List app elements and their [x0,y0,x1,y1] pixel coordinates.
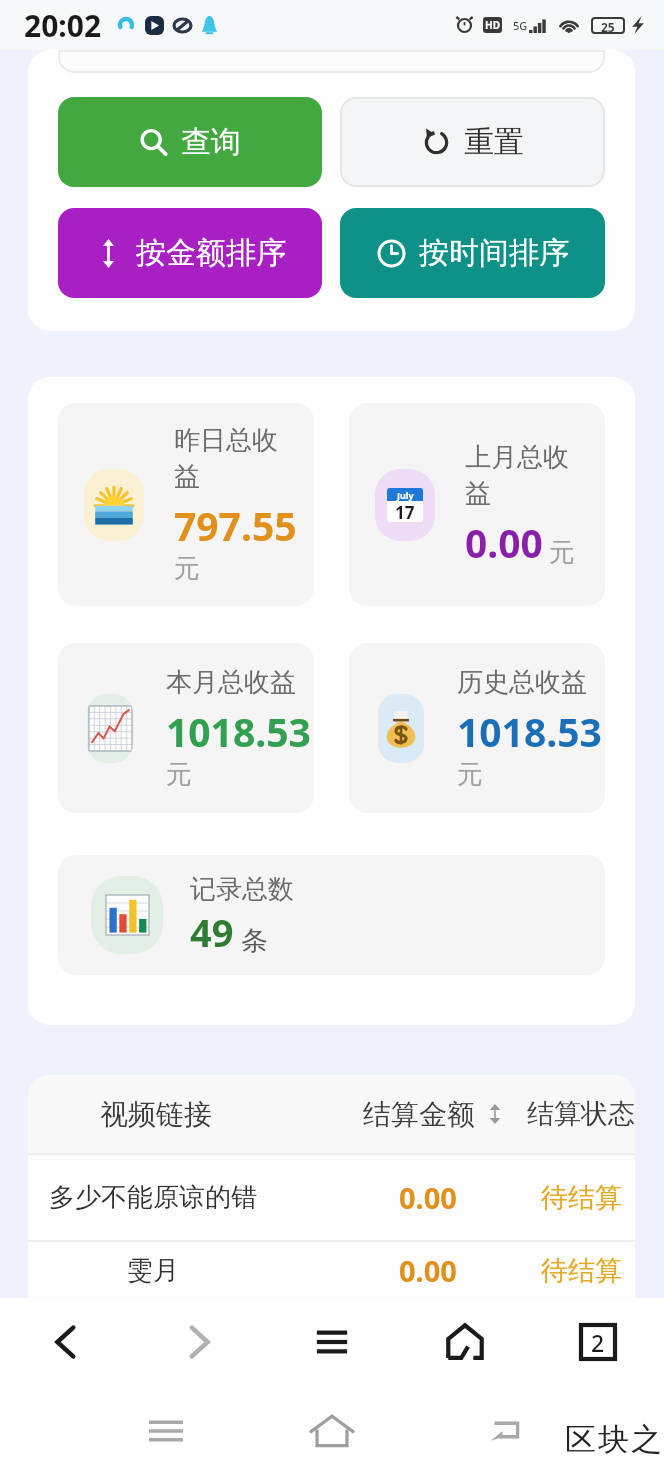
button[interactable]: Back [0,1298,132,1386]
staticText: 797.55 [174,499,297,552]
button[interactable]: Home [398,1298,531,1386]
staticText: 昨日总收益 [174,424,286,493]
staticText: 条 [241,924,268,958]
button[interactable]: 昨日总收益 [58,403,314,606]
button[interactable]: July [349,403,605,606]
button[interactable]: 查询 [58,97,322,187]
staticText: 查询 [181,123,241,161]
staticText: HD [485,18,500,32]
staticText: 1018.53 [166,705,310,758]
staticText: 待结算 [541,1254,622,1288]
button[interactable]: 雯月 [28,1242,635,1298]
staticText: 区块之眼 [564,1420,664,1459]
button[interactable]: Menu [265,1298,398,1386]
staticText: 多少不能原谅的错 [49,1181,257,1214]
button[interactable]: Tabs [531,1298,664,1386]
staticText: 历史总收益 [457,666,601,699]
staticText: 待结算 [541,1181,622,1215]
button[interactable]: 重置 [340,97,605,187]
staticText: 2 [591,1327,605,1358]
staticText: 25 [601,19,615,32]
staticText: 按时间排序 [419,234,569,272]
button[interactable]: Back [448,1386,560,1476]
button[interactable]: Home [276,1386,388,1476]
staticText: 0.00 [465,516,543,569]
staticText: 按金额排序 [136,234,286,272]
staticText: July [397,489,414,501]
staticText: 元 [174,552,200,585]
staticText: 0.00 [399,1251,457,1290]
staticText: 元 [457,758,483,791]
staticText: 视频链接 [100,1097,212,1132]
staticText: 20:02 [24,5,102,46]
button[interactable]: 按金额排序 [58,208,322,298]
staticText: 重置 [464,123,524,161]
button[interactable]: 历史总收益 [349,643,605,813]
button[interactable]: 多少不能原谅的错 [28,1155,635,1240]
staticText: 记录总数 [190,873,294,906]
staticText: 雯月 [127,1254,179,1287]
staticText: 49 [190,906,234,958]
button[interactable]: 按时间排序 [340,208,605,298]
button[interactable]: Recents [0,1386,332,1476]
staticText: 上月总收益 [465,441,577,510]
button[interactable]: Forward [132,1298,265,1386]
staticText: 17 [395,501,415,522]
staticText: 结算状态 [527,1097,635,1131]
staticText: 本月总收益 [166,666,310,699]
staticText: 5G [513,18,528,33]
button[interactable]: 记录总数 [58,855,605,975]
staticText: 结算金额 [363,1097,475,1132]
button[interactable]: 本月总收益 [58,643,314,813]
staticText: 0.00 [399,1178,457,1217]
staticText: 1018.53 [457,705,601,758]
staticText: 元 [549,536,575,569]
staticText: 元 [166,758,192,791]
